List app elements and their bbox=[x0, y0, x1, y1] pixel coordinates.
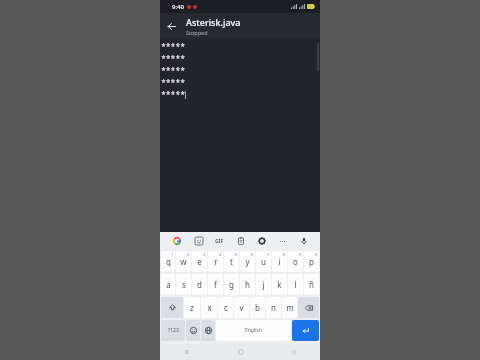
staticText: 6 bbox=[251, 252, 254, 257]
button[interactable]: j bbox=[256, 274, 271, 295]
staticText: o bbox=[293, 256, 298, 267]
button[interactable]: f bbox=[208, 274, 223, 295]
staticText: 4 bbox=[219, 252, 222, 257]
staticText: 9 bbox=[299, 252, 302, 257]
button[interactable]: Clipboard bbox=[230, 232, 251, 250]
staticText: ?123 bbox=[168, 327, 179, 334]
staticText: j bbox=[262, 279, 265, 290]
staticText: 9:40 bbox=[172, 3, 184, 11]
staticText: 3 bbox=[203, 252, 206, 257]
staticText: ***** bbox=[161, 77, 185, 88]
staticText: n bbox=[271, 302, 276, 313]
staticText: a bbox=[166, 279, 171, 290]
button[interactable]: g bbox=[224, 274, 239, 295]
staticText: Stopped bbox=[186, 29, 208, 36]
staticText: i bbox=[278, 256, 281, 267]
staticText: b bbox=[255, 302, 260, 313]
staticText: w bbox=[180, 256, 187, 267]
staticText: h bbox=[245, 279, 250, 290]
staticText: Asterisk.java bbox=[186, 16, 241, 28]
button[interactable]: Recent apps bbox=[160, 344, 214, 360]
button[interactable]: 4 bbox=[208, 251, 223, 272]
staticText: e bbox=[197, 256, 202, 267]
button[interactable]: s bbox=[176, 274, 191, 295]
staticText: GIF bbox=[215, 238, 224, 245]
button[interactable]: Home bbox=[214, 344, 267, 360]
button[interactable]: Emoji bbox=[186, 320, 200, 341]
staticText: r bbox=[214, 256, 218, 267]
staticText: m bbox=[286, 302, 294, 313]
button[interactable]: d bbox=[192, 274, 207, 295]
staticText: ñ bbox=[309, 279, 314, 290]
staticText: 0 bbox=[315, 252, 318, 257]
staticText: 1 bbox=[171, 252, 174, 257]
button[interactable]: b bbox=[250, 297, 265, 318]
staticText: 8 bbox=[283, 252, 286, 257]
staticText: p bbox=[309, 256, 314, 267]
staticText: x bbox=[207, 302, 212, 313]
button[interactable]: English bbox=[216, 320, 291, 341]
button[interactable]: Change language bbox=[201, 320, 215, 341]
staticText: g bbox=[229, 279, 234, 290]
staticText: ***** bbox=[161, 89, 185, 100]
button[interactable]: GIF bbox=[209, 232, 230, 250]
button[interactable]: 5 bbox=[224, 251, 239, 272]
staticText: 2 bbox=[187, 252, 190, 257]
button[interactable]: Stickers bbox=[188, 232, 209, 250]
button[interactable]: a bbox=[161, 274, 175, 295]
button[interactable]: 8 bbox=[272, 251, 287, 272]
button[interactable]: Google search bbox=[166, 232, 188, 250]
button[interactable]: v bbox=[234, 297, 249, 318]
button[interactable]: c bbox=[218, 297, 233, 318]
staticText: q bbox=[166, 256, 171, 267]
staticText: d bbox=[197, 279, 202, 290]
button[interactable]: Back bbox=[160, 15, 182, 37]
staticText: v bbox=[239, 302, 244, 313]
staticText: s bbox=[182, 279, 186, 290]
staticText: ***** bbox=[161, 53, 185, 64]
button[interactable]: k bbox=[272, 274, 287, 295]
button[interactable]: ?123 bbox=[161, 320, 185, 341]
staticText: u bbox=[261, 256, 266, 267]
staticText: c bbox=[224, 302, 228, 313]
staticText: t bbox=[230, 256, 233, 267]
button[interactable]: 7 bbox=[256, 251, 271, 272]
staticText: z bbox=[190, 302, 194, 313]
button[interactable]: n bbox=[266, 297, 281, 318]
button[interactable]: m bbox=[282, 297, 297, 318]
staticText: l bbox=[294, 279, 297, 290]
staticText: k bbox=[277, 279, 282, 290]
button[interactable]: Voice input bbox=[293, 232, 314, 250]
staticText: 7 bbox=[267, 252, 270, 257]
button[interactable]: Backspace bbox=[298, 297, 319, 318]
staticText: ***** bbox=[161, 41, 185, 52]
staticText: 5 bbox=[235, 252, 238, 257]
button[interactable]: More options bbox=[272, 232, 293, 250]
button[interactable]: h bbox=[240, 274, 255, 295]
staticText: ***** bbox=[161, 65, 185, 76]
button[interactable]: 1 bbox=[161, 251, 175, 272]
staticText: English bbox=[245, 327, 263, 334]
button[interactable]: 2 bbox=[176, 251, 191, 272]
button[interactable]: Shift bbox=[161, 297, 183, 318]
staticText: y bbox=[245, 256, 250, 267]
button[interactable]: 0 bbox=[304, 251, 319, 272]
button[interactable]: ***** bbox=[160, 39, 320, 232]
button[interactable]: 3 bbox=[192, 251, 207, 272]
button[interactable]: x bbox=[201, 297, 217, 318]
button[interactable]: l bbox=[288, 274, 303, 295]
button[interactable]: ñ bbox=[304, 274, 319, 295]
button[interactable]: Enter bbox=[292, 320, 319, 341]
button[interactable]: Settings bbox=[251, 232, 272, 250]
button[interactable]: 6 bbox=[240, 251, 255, 272]
button[interactable]: z bbox=[184, 297, 200, 318]
button[interactable]: 9 bbox=[288, 251, 303, 272]
staticText: f bbox=[214, 279, 217, 290]
